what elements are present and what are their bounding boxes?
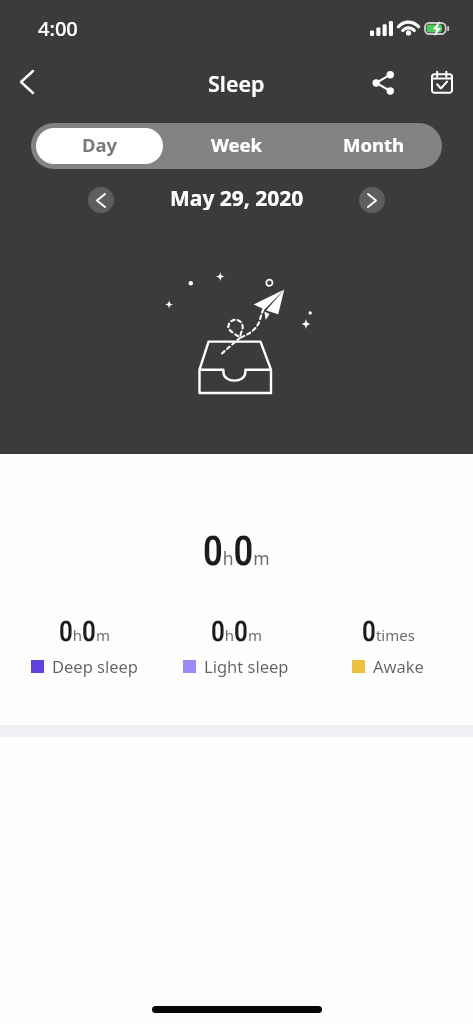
staticText: Week <box>211 132 263 157</box>
button[interactable]: Previous day <box>88 187 114 213</box>
button[interactable]: Next day <box>359 187 385 213</box>
button[interactable]: Back <box>5 60 49 104</box>
button[interactable]: 0times <box>312 615 464 677</box>
button[interactable]: 0h0m <box>9 615 160 677</box>
staticText: Light sleep <box>204 655 289 677</box>
staticText: Day <box>82 132 118 157</box>
staticText: 0times <box>362 615 415 648</box>
button[interactable]: 0h0m <box>160 615 312 677</box>
button[interactable]: Calendar <box>420 60 464 104</box>
button[interactable]: Week <box>168 123 305 169</box>
button[interactable]: Day <box>36 128 163 164</box>
staticText: Month <box>343 132 405 157</box>
staticText: 0h0m <box>59 615 110 648</box>
staticText: Deep sleep <box>52 655 139 677</box>
staticText: 0h0m <box>211 615 262 648</box>
staticText: May 29, 2020 <box>170 184 304 210</box>
button[interactable]: Month <box>305 123 442 169</box>
staticText: Awake <box>373 655 424 677</box>
staticText: 4:00 <box>38 15 78 42</box>
button[interactable]: Share <box>361 60 405 104</box>
staticText: Sleep <box>208 69 265 98</box>
staticText: 0h0m <box>203 528 270 575</box>
